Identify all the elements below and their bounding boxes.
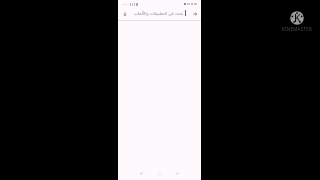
button[interactable]: Recents bbox=[139, 171, 143, 175]
button[interactable]: Home bbox=[157, 171, 161, 175]
staticText: KINEMASTER bbox=[282, 26, 312, 32]
staticText: K bbox=[294, 11, 301, 25]
button[interactable]: Back bbox=[175, 171, 179, 175]
button[interactable]: Send bbox=[188, 8, 201, 20]
button[interactable]: Download bbox=[118, 8, 131, 20]
staticText: بحث عن التطبيقات والألعاب bbox=[134, 10, 184, 16]
